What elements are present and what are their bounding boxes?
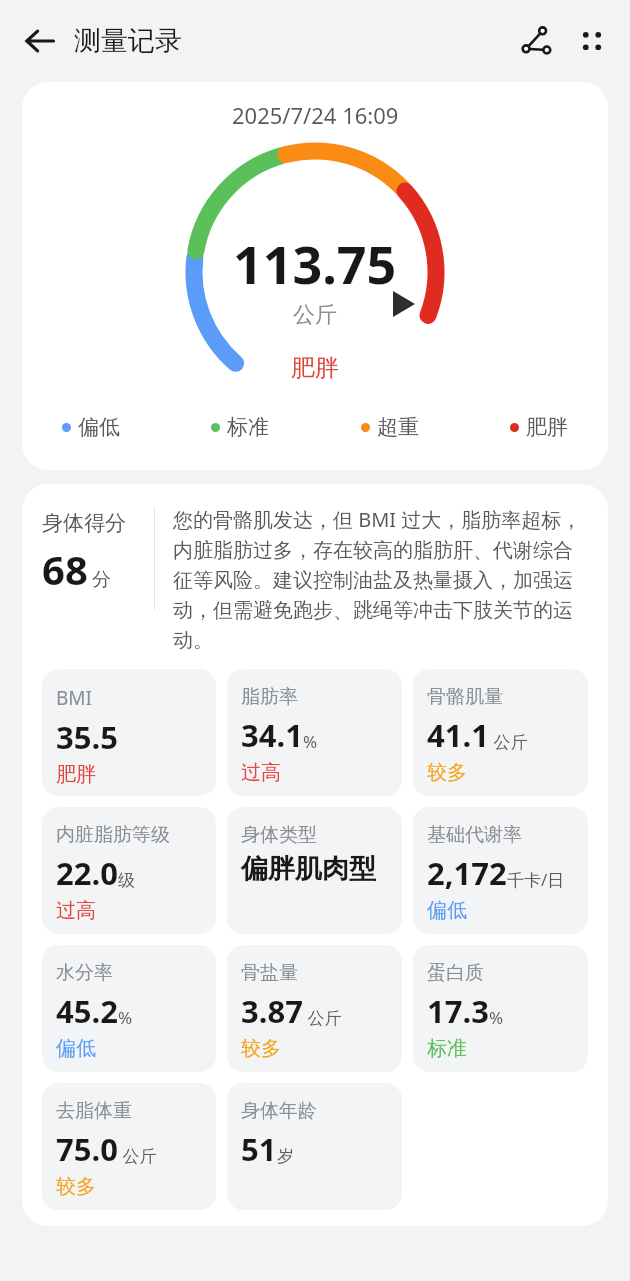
staticText: 75.0 xyxy=(56,1128,118,1170)
staticText: 蛋白质 xyxy=(427,961,484,985)
staticText: 公斤 xyxy=(489,730,528,753)
button[interactable]: 水分率 xyxy=(42,945,216,1072)
button[interactable]: BMI xyxy=(42,669,216,796)
staticText: 35.5 xyxy=(56,716,118,758)
staticText: 您的骨骼肌发达，但 BMI 过大，脂肪率超标，内脏脂肪过多，存在较高的脂肪肝、代… xyxy=(173,506,588,653)
staticText: 骨骼肌量 xyxy=(427,685,503,709)
staticText: 肥胖 xyxy=(526,414,568,440)
staticText: 45.2 xyxy=(56,990,118,1032)
button[interactable]: 骨骼肌量 xyxy=(413,669,588,796)
staticText: 51 xyxy=(241,1128,277,1170)
staticText: 身体得分 xyxy=(42,510,126,536)
staticText: 标准 xyxy=(227,414,269,440)
staticText: 超重 xyxy=(377,414,419,440)
button[interactable]: 骨盐量 xyxy=(227,945,402,1072)
staticText: 测量记录 xyxy=(74,24,182,58)
staticText: 偏胖肌肉型 xyxy=(241,852,376,886)
button[interactable]: 身体年龄 xyxy=(227,1083,402,1210)
staticText: 千卡/日 xyxy=(507,868,565,891)
staticText: 身体年龄 xyxy=(241,1099,317,1123)
button[interactable]: Back xyxy=(12,13,68,69)
staticText: 偏低 xyxy=(78,414,120,440)
staticText: 过高 xyxy=(241,760,281,785)
staticText: % xyxy=(118,1006,133,1029)
staticText: 22.0 xyxy=(56,852,118,894)
button[interactable]: More options xyxy=(564,13,620,69)
staticText: 2025/7/24 16:09 xyxy=(232,100,399,130)
button[interactable]: 蛋白质 xyxy=(413,945,588,1072)
staticText: 41.1 xyxy=(427,714,489,756)
staticText: 3.87 xyxy=(241,990,303,1032)
button[interactable]: 内脏脂肪等级 xyxy=(42,807,216,934)
staticText: 基础代谢率 xyxy=(427,823,522,847)
staticText: BMI xyxy=(56,685,93,711)
staticText: 脂肪率 xyxy=(241,685,298,709)
staticText: 去脂体重 xyxy=(56,1099,132,1123)
staticText: 分 xyxy=(92,568,111,592)
staticText: 公斤 xyxy=(293,301,337,329)
staticText: 公斤 xyxy=(303,1006,342,1029)
staticText: 岁 xyxy=(277,1146,294,1167)
staticText: 过高 xyxy=(56,898,96,923)
staticText: 68 xyxy=(42,542,88,596)
staticText: 较多 xyxy=(241,1036,281,1061)
staticText: 级 xyxy=(118,870,135,891)
staticText: 偏低 xyxy=(427,898,467,923)
button[interactable]: 脂肪率 xyxy=(227,669,402,796)
staticText: 113.75 xyxy=(233,228,397,299)
staticText: 偏低 xyxy=(56,1036,96,1061)
staticText: 内脏脂肪等级 xyxy=(56,823,170,847)
staticText: 肥胖 xyxy=(56,762,96,787)
staticText: 34.1 xyxy=(241,714,303,756)
staticText: 2,172 xyxy=(427,852,507,894)
button[interactable]: 去脂体重 xyxy=(42,1083,216,1210)
staticText: 水分率 xyxy=(56,961,113,985)
button[interactable]: 基础代谢率 xyxy=(413,807,588,934)
staticText: 较多 xyxy=(427,760,467,785)
staticText: 骨盐量 xyxy=(241,961,298,985)
button[interactable]: Share xyxy=(508,13,564,69)
staticText: 17.3 xyxy=(427,990,489,1032)
staticText: 较多 xyxy=(56,1174,96,1199)
staticText: 肥胖 xyxy=(291,353,339,383)
staticText: 标准 xyxy=(427,1036,467,1061)
staticText: % xyxy=(489,1006,504,1029)
staticText: 公斤 xyxy=(118,1144,157,1167)
staticText: 身体类型 xyxy=(241,823,317,847)
button[interactable]: 身体类型 xyxy=(227,807,402,934)
staticText: % xyxy=(303,730,318,753)
